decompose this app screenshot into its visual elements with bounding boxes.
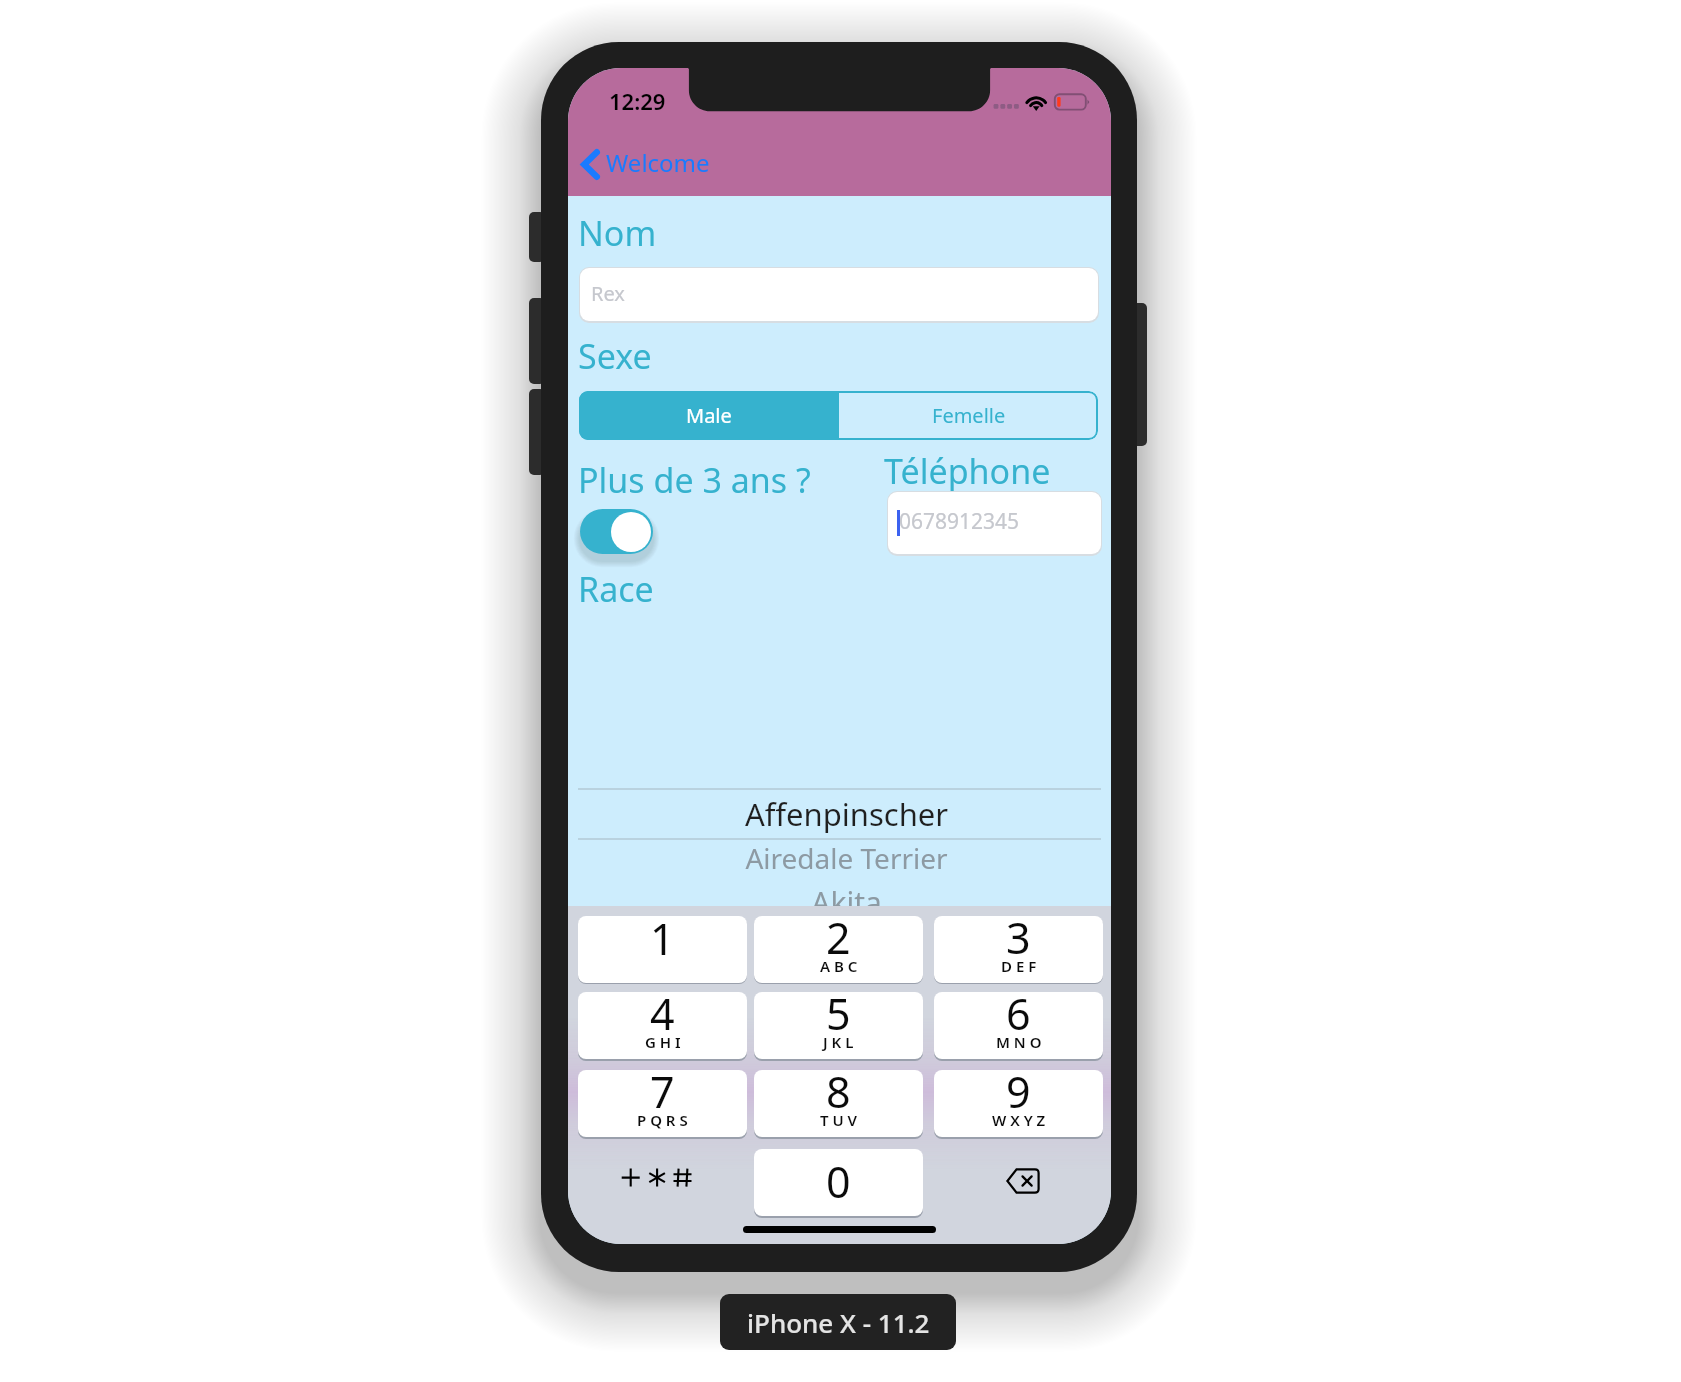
staticText: 8: [826, 1070, 851, 1121]
staticText: M N O: [996, 1032, 1042, 1052]
button[interactable]: Symbols: [578, 1149, 747, 1216]
staticText: D E F: [1001, 956, 1037, 976]
staticText: 0678912345: [899, 507, 1020, 536]
staticText: Rex: [591, 280, 625, 307]
staticText: 5: [826, 992, 851, 1043]
staticText: J K L: [823, 1032, 854, 1052]
button[interactable]: Femelle: [839, 391, 1098, 440]
button[interactable]: 9: [934, 1070, 1103, 1137]
button[interactable]: Male: [579, 391, 839, 440]
button[interactable]: 3: [934, 916, 1103, 983]
staticText: Airedale Terrier: [575, 839, 1111, 877]
button[interactable]: iPhone X - 11.2: [720, 1294, 956, 1350]
staticText: Male: [686, 402, 732, 429]
button[interactable]: Plus de 3 ans: [580, 509, 653, 554]
staticText: 12:29: [609, 86, 666, 116]
staticText: 0: [826, 1152, 851, 1211]
button[interactable]: 0678912345: [888, 492, 1101, 554]
staticText: Téléphone: [884, 448, 1051, 494]
button[interactable]: Delete: [934, 1149, 1103, 1216]
staticText: W X Y Z: [992, 1110, 1046, 1130]
staticText: T U V: [820, 1110, 858, 1130]
button[interactable]: 6: [934, 992, 1103, 1059]
staticText: Welcome: [606, 146, 710, 179]
staticText: Nom: [578, 210, 657, 256]
staticText: Affenpinscher: [575, 793, 1111, 835]
staticText: P Q R S: [637, 1110, 688, 1130]
staticText: Race: [578, 566, 654, 612]
staticText: A B C: [820, 956, 858, 976]
button[interactable]: 4: [578, 992, 747, 1059]
button[interactable]: 8: [754, 1070, 923, 1137]
button[interactable]: Rex: [580, 268, 1098, 321]
staticText: 6: [1006, 992, 1031, 1043]
button[interactable]: 1: [578, 916, 747, 983]
staticText: 7: [650, 1070, 675, 1121]
staticText: 3: [1006, 916, 1031, 967]
staticText: Plus de 3 ans ?: [578, 457, 811, 503]
staticText: iPhone X - 11.2: [747, 1305, 930, 1340]
button[interactable]: 7: [578, 1070, 747, 1137]
button[interactable]: 0: [754, 1149, 923, 1216]
staticText: 4: [650, 992, 675, 1043]
button[interactable]: 2: [754, 916, 923, 983]
button[interactable]: 5: [754, 992, 923, 1059]
staticText: Sexe: [578, 333, 652, 379]
button[interactable]: Welcome: [576, 146, 718, 184]
staticText: 9: [1006, 1070, 1031, 1121]
staticText: 2: [826, 916, 851, 967]
staticText: G H I: [645, 1032, 681, 1052]
staticText: Akita: [575, 882, 1111, 923]
staticText: Femelle: [932, 402, 1006, 429]
staticText: 1: [650, 916, 675, 968]
